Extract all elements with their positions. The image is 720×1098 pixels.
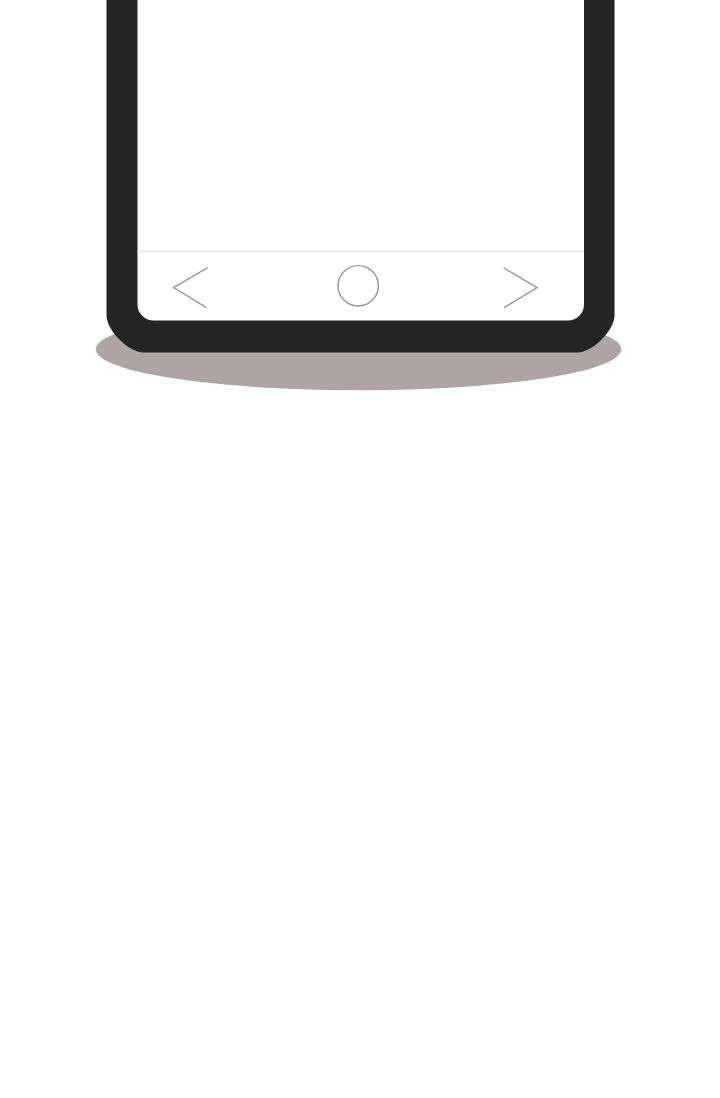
button[interactable]: Recent apps (493, 254, 549, 318)
button[interactable]: Back (156, 254, 212, 318)
button[interactable]: Home (330, 254, 386, 318)
